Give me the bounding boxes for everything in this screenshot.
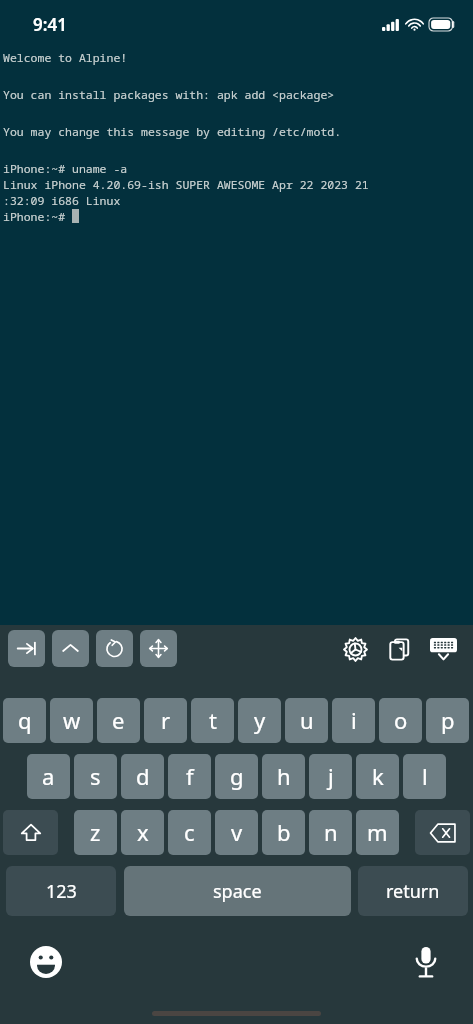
button[interactable]: e [97,698,140,743]
staticText: p [441,705,455,735]
button[interactable]: y [238,698,281,743]
staticText: You can install packages with: apk add <… [3,87,335,103]
button[interactable]: Control [52,630,89,667]
staticText: y [254,705,266,735]
button[interactable]: p [426,698,469,743]
button[interactable]: u [285,698,328,743]
staticText: x [137,817,149,847]
button[interactable]: Dictation [406,942,446,982]
button[interactable]: i [332,698,375,743]
button[interactable]: m [356,810,399,855]
staticText: You may change this message by editing /… [3,124,342,140]
staticText: h [277,761,291,791]
button[interactable]: Paste [381,631,417,667]
staticText: j [328,761,334,791]
staticText: q [18,705,32,735]
staticText: z [90,817,101,847]
button[interactable]: l [403,754,446,799]
button[interactable]: Backspace [415,810,470,855]
button[interactable]: Tab [8,630,45,667]
staticText: iPhone:~# uname -a [3,161,128,177]
button[interactable]: r [144,698,187,743]
button[interactable]: n [309,810,352,855]
staticText: return [386,879,440,904]
staticText: e [112,705,125,735]
button[interactable]: Emoji [26,942,66,982]
button[interactable]: q [3,698,46,743]
staticText: l [422,761,428,791]
button[interactable]: b [262,810,305,855]
staticText: r [161,705,171,735]
button[interactable]: o [379,698,422,743]
button[interactable]: j [309,754,352,799]
button[interactable]: 123 [6,866,116,916]
button[interactable]: t [191,698,234,743]
button[interactable]: z [74,810,117,855]
button[interactable]: h [262,754,305,799]
staticText: a [42,761,55,791]
staticText: v [231,817,243,847]
button[interactable]: return [358,866,468,916]
button[interactable]: Shift [3,810,58,855]
staticText: b [277,817,291,847]
button[interactable]: s [74,754,117,799]
button[interactable]: Escape [96,630,133,667]
staticText: w [63,705,81,735]
staticText: 123 [46,879,77,904]
staticText: c [184,817,195,847]
staticText: n [324,817,338,847]
staticText: Welcome to Alpine! [3,50,128,66]
button[interactable]: Hide keyboard [425,631,461,667]
button[interactable]: Arrow keys [140,630,177,667]
staticText: :32:09 i686 Linux [3,193,121,209]
staticText: i [351,705,357,735]
button[interactable]: x [121,810,164,855]
button[interactable]: d [121,754,164,799]
staticText: s [90,761,101,791]
staticText: u [300,705,314,735]
staticText: k [372,761,384,791]
button[interactable]: f [168,754,211,799]
button[interactable]: a [27,754,70,799]
button[interactable]: k [356,754,399,799]
button[interactable]: v [215,810,258,855]
button[interactable]: c [168,810,211,855]
staticText: t [209,705,217,735]
button[interactable]: w [50,698,93,743]
staticText: o [394,705,408,735]
staticText: f [186,761,194,791]
staticText: iPhone:~# [3,209,72,225]
staticText: 9:41 [33,13,67,36]
staticText: m [367,817,388,847]
button[interactable]: Settings [337,631,373,667]
staticText: g [230,761,244,791]
staticText: Linux iPhone 4.20.69-ish SUPER AWESOME A… [3,177,369,193]
button[interactable]: space [124,866,351,916]
button[interactable]: g [215,754,258,799]
staticText: d [136,761,150,791]
staticText: space [213,879,262,904]
